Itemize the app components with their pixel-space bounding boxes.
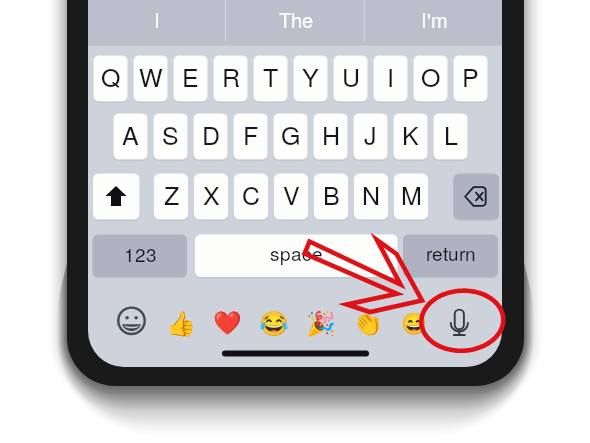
button[interactable]: M xyxy=(394,174,428,220)
button[interactable]: S xyxy=(154,114,188,160)
button[interactable]: Grin xyxy=(396,304,432,340)
button[interactable]: N xyxy=(354,174,388,220)
button[interactable]: G xyxy=(274,114,308,160)
button[interactable]: V xyxy=(274,174,308,220)
button[interactable]: The xyxy=(226,0,364,45)
button[interactable]: Heart xyxy=(208,304,244,340)
button[interactable]: K xyxy=(394,114,428,160)
button[interactable]: Party xyxy=(302,304,338,340)
button[interactable]: Laughing xyxy=(255,304,291,340)
button[interactable]: Shift xyxy=(93,174,139,220)
button[interactable]: O xyxy=(414,56,448,102)
button[interactable]: Thumbs up xyxy=(161,304,197,340)
button[interactable]: P xyxy=(454,56,488,102)
button[interactable]: I'm xyxy=(364,0,502,45)
button[interactable]: Dictation microphone xyxy=(441,304,477,342)
button[interactable]: Emoji keyboard xyxy=(114,304,150,340)
button[interactable]: T xyxy=(254,56,288,102)
button[interactable]: D xyxy=(194,114,228,160)
button[interactable]: H xyxy=(314,114,348,160)
button[interactable]: R xyxy=(214,56,248,102)
button[interactable]: W xyxy=(134,56,168,102)
button[interactable]: U xyxy=(334,56,368,102)
button[interactable]: I xyxy=(88,0,226,45)
button[interactable]: C xyxy=(234,174,268,220)
button[interactable]: L xyxy=(434,114,468,160)
button[interactable]: Z xyxy=(154,174,188,220)
button[interactable]: Y xyxy=(294,56,328,102)
button[interactable]: J xyxy=(354,114,388,160)
button[interactable]: Backspace xyxy=(453,174,495,220)
button[interactable]: F xyxy=(234,114,268,160)
button[interactable]: I xyxy=(374,56,408,102)
button[interactable]: X xyxy=(194,174,228,220)
button[interactable]: B xyxy=(314,174,348,220)
button[interactable]: return xyxy=(403,234,498,277)
button[interactable]: A xyxy=(114,114,148,160)
button[interactable]: E xyxy=(174,56,208,102)
button[interactable]: space xyxy=(195,234,398,277)
button[interactable]: Clap xyxy=(349,304,385,340)
button[interactable]: 123 xyxy=(92,234,187,277)
button[interactable]: Q xyxy=(94,56,128,102)
